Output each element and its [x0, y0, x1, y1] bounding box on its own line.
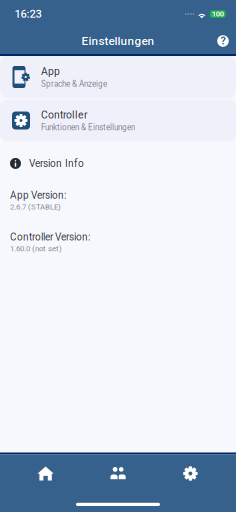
staticText: Funktionen & Einstellungen — [41, 123, 135, 132]
button[interactable]: Settings — [154, 461, 227, 485]
staticText: Version Info — [29, 157, 84, 169]
button[interactable]: Controller — [0, 99, 236, 141]
button[interactable]: App — [0, 56, 236, 98]
staticText: App Version: — [10, 189, 66, 201]
staticText: Sprache & Anzeige — [41, 79, 107, 89]
staticText: Controller Version: — [10, 231, 90, 243]
button[interactable]: Home — [9, 461, 82, 485]
button[interactable]: Contacts — [82, 461, 154, 485]
staticText: 100 — [212, 10, 224, 18]
staticText: 1.60.0 (not set) — [10, 244, 62, 253]
staticText: ? — [220, 35, 225, 47]
staticText: Einstellungen — [81, 34, 154, 48]
staticText: 16:23 — [14, 7, 41, 20]
button[interactable]: Help — [212, 30, 234, 52]
staticText: Controller — [41, 109, 88, 121]
staticText: App — [41, 65, 60, 77]
staticText: 2.6.7 (STABLE) — [10, 202, 61, 211]
